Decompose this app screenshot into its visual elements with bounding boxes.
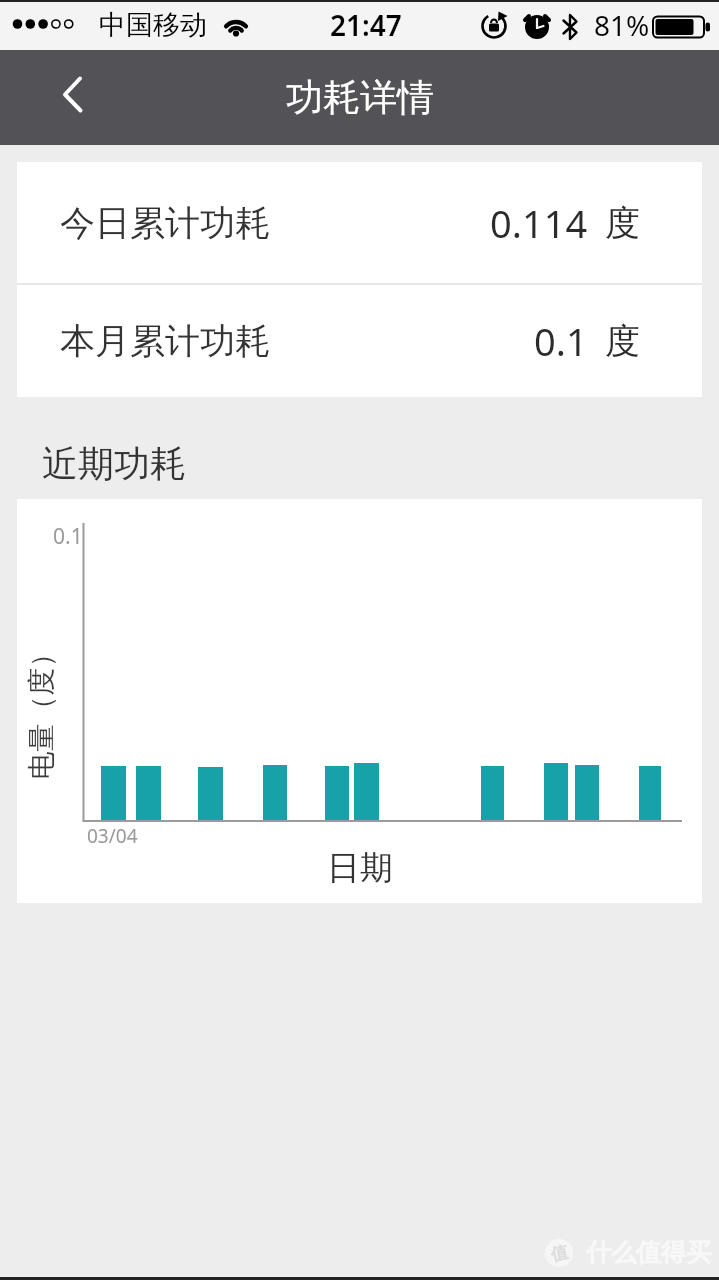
staticText: 今日累计功耗 — [60, 201, 270, 245]
staticText: 度 — [605, 201, 640, 245]
button[interactable] — [40, 74, 88, 122]
staticText: 值 — [549, 1241, 570, 1266]
staticText: 什么值得买 — [586, 1237, 711, 1268]
staticText: 功耗详情 — [286, 74, 434, 121]
staticText: 电量（度） — [23, 639, 58, 779]
staticText: 本月累计功耗 — [60, 319, 270, 363]
button[interactable]: 今日累计功耗 — [17, 162, 702, 283]
staticText: 0.1 — [534, 315, 588, 367]
staticText: 81% — [594, 6, 650, 44]
staticText: 近期功耗 — [42, 441, 186, 486]
staticText: 0.114 — [490, 197, 588, 249]
staticText: 日期 — [327, 847, 393, 889]
staticText: 度 — [605, 319, 640, 363]
button[interactable]: 本月累计功耗 — [17, 285, 702, 397]
staticText: 中国移动 — [99, 8, 207, 42]
staticText: 03/04 — [87, 823, 138, 849]
staticText: 0.1 — [53, 522, 83, 551]
staticText: 21:47 — [330, 6, 402, 44]
